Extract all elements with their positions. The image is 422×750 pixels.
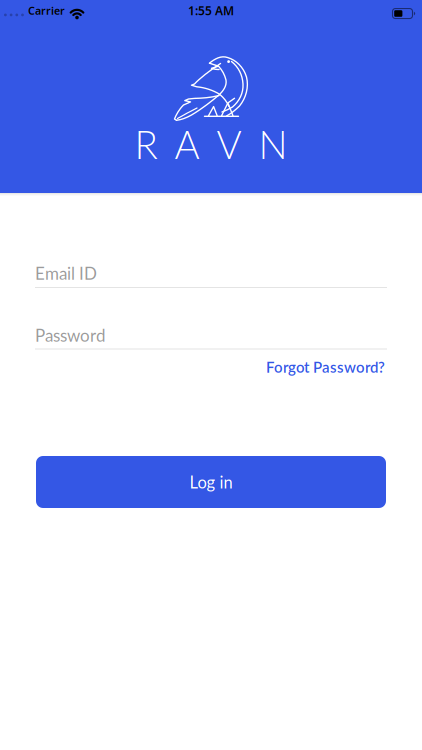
button[interactable]: Password bbox=[35, 325, 387, 351]
staticText: R bbox=[134, 121, 157, 167]
staticText: N bbox=[258, 121, 287, 167]
staticText: A bbox=[174, 121, 199, 167]
staticText: Password bbox=[35, 325, 106, 345]
button[interactable]: Log in bbox=[36, 456, 386, 508]
staticText: V bbox=[216, 121, 241, 167]
button[interactable]: Forgot Password? bbox=[266, 358, 385, 376]
staticText: Email ID bbox=[35, 263, 97, 283]
staticText: 1:55 AM bbox=[188, 2, 234, 18]
button[interactable]: Email ID bbox=[35, 263, 387, 289]
staticText: Carrier bbox=[28, 3, 65, 18]
staticText: Log in bbox=[189, 472, 232, 492]
staticText: Forgot Password? bbox=[266, 358, 385, 376]
